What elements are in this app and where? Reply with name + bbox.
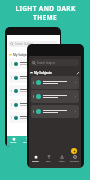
staticText: Test [46, 160, 51, 163]
button[interactable]: Search [9, 41, 58, 47]
button[interactable]: Search [31, 59, 79, 66]
button[interactable] [9, 85, 59, 96]
button[interactable]: Add [71, 148, 77, 154]
button[interactable]: Tab [20, 136, 33, 145]
button[interactable]: Tab [68, 152, 81, 166]
staticText: Level [59, 160, 65, 163]
button[interactable] [9, 72, 59, 83]
button[interactable]: Tab [42, 152, 55, 166]
button[interactable] [31, 105, 79, 118]
button[interactable]: Tab [29, 152, 42, 166]
staticText: THEME [33, 13, 57, 22]
button[interactable] [9, 58, 59, 69]
button[interactable] [9, 112, 59, 123]
staticText: Search Subject [15, 42, 33, 46]
staticText: Search Subject [37, 61, 55, 65]
staticText: My Subjects [34, 71, 52, 75]
button[interactable] [31, 76, 79, 89]
button[interactable]: Tab [7, 136, 20, 145]
button[interactable]: Edit [75, 70, 80, 75]
button[interactable] [31, 90, 79, 103]
staticText: Home [10, 141, 17, 144]
staticText: Home [32, 160, 39, 163]
staticText: Settings [70, 160, 79, 163]
staticText: LIGHT AND DARK [15, 4, 76, 13]
staticText: My Subjects [13, 53, 31, 57]
staticText: Home [23, 141, 30, 144]
button[interactable] [9, 99, 59, 110]
button[interactable]: Tab [55, 152, 68, 166]
